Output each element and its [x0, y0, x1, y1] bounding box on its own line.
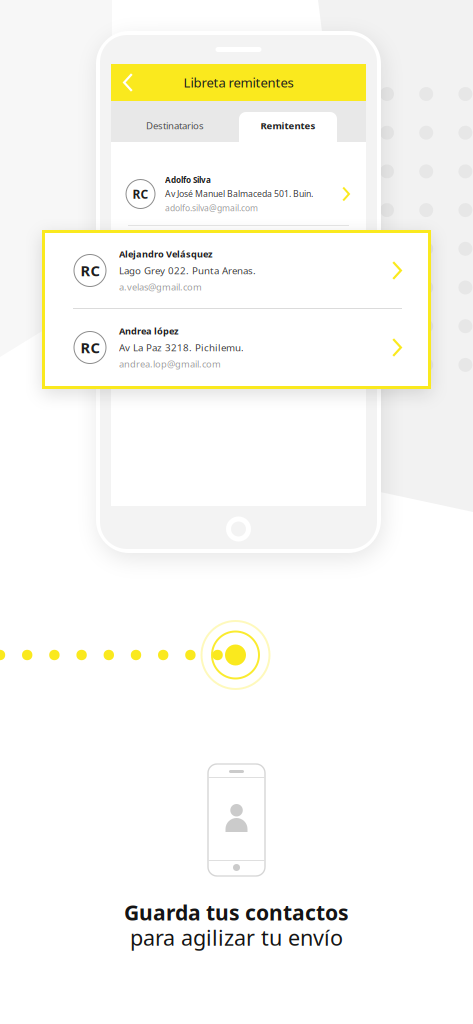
staticText: Av La Paz 3218. Pichilemu. [119, 341, 244, 354]
staticText: Libreta remitentes [183, 74, 293, 91]
staticText: para agilizar tu envío [130, 923, 343, 952]
staticText: RC [80, 260, 99, 280]
staticText: Destinatarios [146, 119, 204, 132]
button[interactable]: RC [45, 309, 428, 386]
staticText: Av José Manuel Balmaceda 501. Buin. [165, 188, 313, 200]
staticText: Guarda tus contactos [124, 898, 349, 927]
staticText: RC [132, 186, 148, 202]
staticText: Andrea lópez [119, 325, 179, 337]
staticText: RC [80, 337, 99, 357]
staticText: Remitentes [260, 119, 315, 132]
staticText: Lago Grey 022. Punta Arenas. [119, 264, 256, 277]
staticText: adolfo.silva@gmail.com [165, 202, 258, 214]
button[interactable]: RC [45, 233, 428, 308]
staticText: Adolfo Silva [165, 174, 211, 185]
staticText: Alejandro Velásquez [119, 248, 213, 260]
staticText: a.velas@gmail.com [119, 280, 202, 293]
staticText: andrea.lop@gmail.com [119, 357, 221, 370]
